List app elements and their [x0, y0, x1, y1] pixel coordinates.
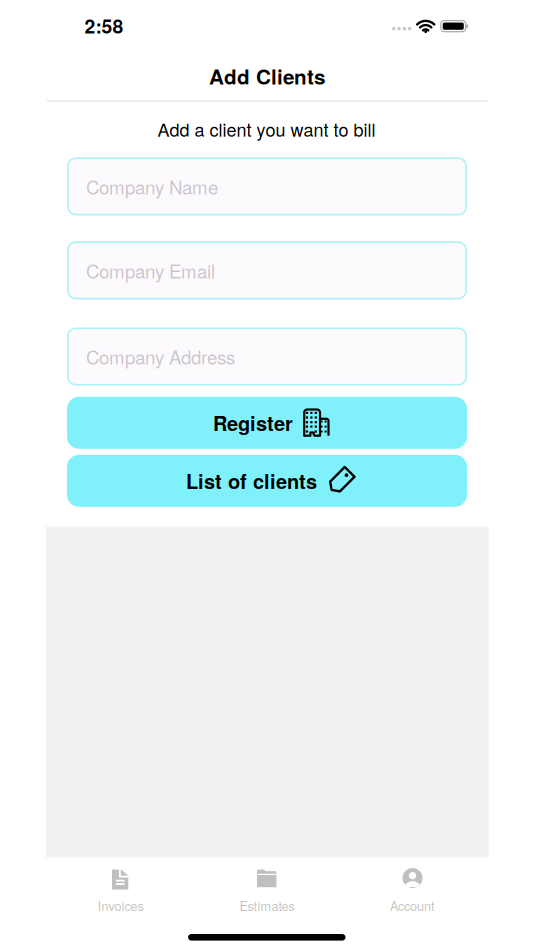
button[interactable]: Estimates [212, 864, 322, 916]
staticText: Register [213, 408, 293, 437]
button[interactable]: List of clients [67, 455, 467, 507]
staticText: Invoices [97, 896, 143, 914]
button[interactable]: Company Address [67, 327, 467, 385]
staticText: List of clients [186, 466, 317, 495]
staticText: Company Email [86, 257, 215, 284]
staticText: Add Clients [209, 61, 325, 91]
button[interactable]: Register [67, 397, 467, 449]
staticText: 2:58 [84, 12, 123, 40]
staticText: Account [390, 896, 435, 914]
button[interactable]: Account [357, 864, 467, 916]
button[interactable]: Invoices [65, 864, 175, 916]
staticText: Company Name [86, 173, 218, 200]
staticText: Add a client you want to bill [157, 116, 375, 142]
button[interactable]: Company Name [67, 157, 467, 215]
staticText: Estimates [239, 896, 294, 914]
staticText: Company Address [86, 343, 235, 370]
button[interactable]: Company Email [67, 241, 467, 299]
